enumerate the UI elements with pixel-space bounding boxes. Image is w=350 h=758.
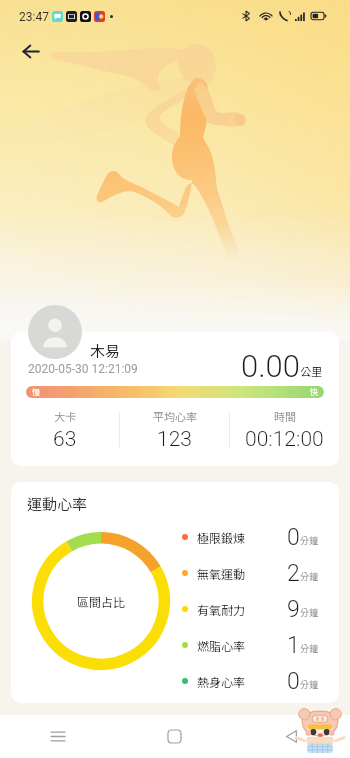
staticText: 分鐘 [300,678,319,691]
staticText: 9 [287,596,300,623]
staticText: 極限鍛煉 [197,529,246,546]
button[interactable]: Home [116,715,233,758]
staticText: 運動心率 [27,493,88,515]
button[interactable] [11,482,339,703]
staticText: 分鐘 [300,642,319,655]
staticText: 1 [287,632,300,659]
staticText: 平均心率 [153,408,197,424]
staticText: 63 [53,427,77,450]
staticText: 時間 [274,408,296,424]
staticText: 無氧運動 [197,565,246,582]
staticText: 23:47 [19,10,49,24]
staticText: 木易 [90,340,121,362]
staticText: 00:12:00 [245,427,324,450]
button[interactable]: Back [233,715,350,758]
staticText: 分鐘 [300,606,319,619]
button[interactable] [11,332,339,466]
button[interactable]: Back [14,34,48,68]
staticText: 0 [287,668,300,695]
staticText: 快 [310,386,318,398]
staticText: 有氧耐力 [197,601,246,618]
staticText: 慢 [32,386,40,398]
staticText: 0.00 [241,348,300,384]
staticText: 大卡 [54,408,76,424]
staticText: 2 [287,560,300,587]
staticText: 燃脂心率 [197,637,246,654]
staticText: 公里 [300,363,322,379]
staticText: 0 [287,524,300,551]
staticText: 區間占比 [77,593,126,610]
staticText: 123 [157,427,192,450]
staticText: 分鐘 [300,534,319,547]
staticText: 2020-05-30 12:21:09 [28,362,138,376]
button[interactable]: Recent apps [0,715,116,758]
staticText: 熱身心率 [197,673,246,690]
staticText: 分鐘 [300,570,319,583]
